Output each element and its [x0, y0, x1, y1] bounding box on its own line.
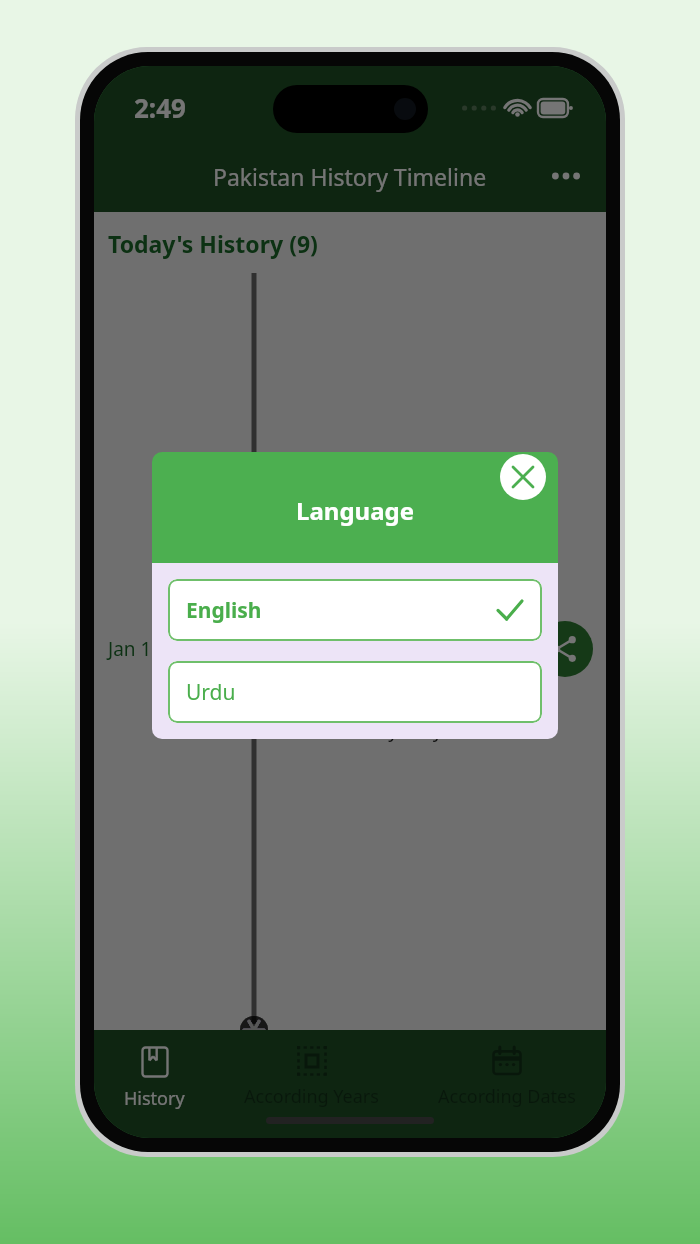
button[interactable]: Close	[500, 454, 546, 500]
staticText: Urdu	[186, 678, 236, 707]
staticText: Today's History (9)	[108, 228, 318, 259]
staticText: Jan 18, 1976	[108, 636, 216, 662]
staticText: According Years	[244, 1084, 379, 1109]
staticText: History	[124, 1086, 185, 1111]
staticText: English	[186, 596, 262, 625]
staticText: 2:49	[134, 90, 186, 125]
button[interactable]: English	[168, 579, 542, 641]
staticText: Pakistan cricket all-rounder Imran Khan …	[276, 554, 522, 743]
staticText: Pakistan History Timeline	[213, 161, 487, 192]
button[interactable]: Share	[537, 621, 593, 677]
staticText: Language	[296, 494, 415, 527]
button[interactable]: According Dates	[428, 1042, 586, 1113]
button[interactable]: Jan 18, 1976	[94, 267, 606, 1030]
button[interactable]: More options	[544, 154, 588, 198]
button[interactable]: Urdu	[168, 661, 542, 723]
staticText: According Dates	[438, 1084, 576, 1109]
button[interactable]: History	[114, 1042, 195, 1115]
